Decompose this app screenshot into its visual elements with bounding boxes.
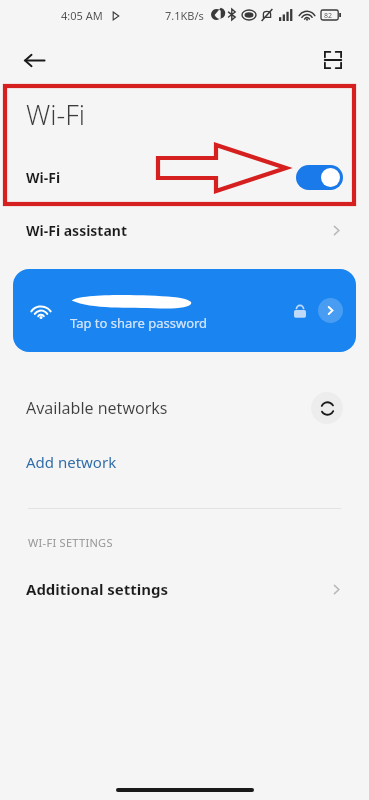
button[interactable]: Scan QR code	[315, 42, 351, 78]
staticText: Wi-Fi	[26, 96, 86, 133]
staticText: Wi-Fi assistant	[26, 221, 128, 240]
button[interactable]: Wi-Fi	[0, 155, 369, 199]
button[interactable]: Network details	[318, 298, 343, 323]
button[interactable]: Additional settings	[0, 572, 369, 606]
staticText: 82	[324, 11, 333, 21]
button[interactable]: Wi-Fi assistant	[0, 213, 369, 247]
staticText: Wi-Fi	[26, 168, 61, 187]
staticText: WI-FI SETTINGS	[28, 535, 113, 550]
staticText: Additional settings	[26, 579, 169, 599]
button[interactable]: Home gesture bar	[116, 788, 254, 792]
button[interactable]: Tap to share password	[13, 269, 356, 352]
staticText: Tap to share password	[70, 314, 208, 332]
staticText: 4:05 AM	[61, 8, 103, 23]
staticText: Available networks	[26, 397, 168, 419]
staticText: 7.1KB/s	[165, 8, 204, 23]
button[interactable]: Add network	[0, 446, 369, 478]
button[interactable]: Wi-Fi toggle, on	[296, 165, 343, 190]
button[interactable]: Back	[16, 42, 52, 78]
staticText: Add network	[26, 452, 117, 472]
button[interactable]: Refresh networks	[311, 392, 343, 424]
